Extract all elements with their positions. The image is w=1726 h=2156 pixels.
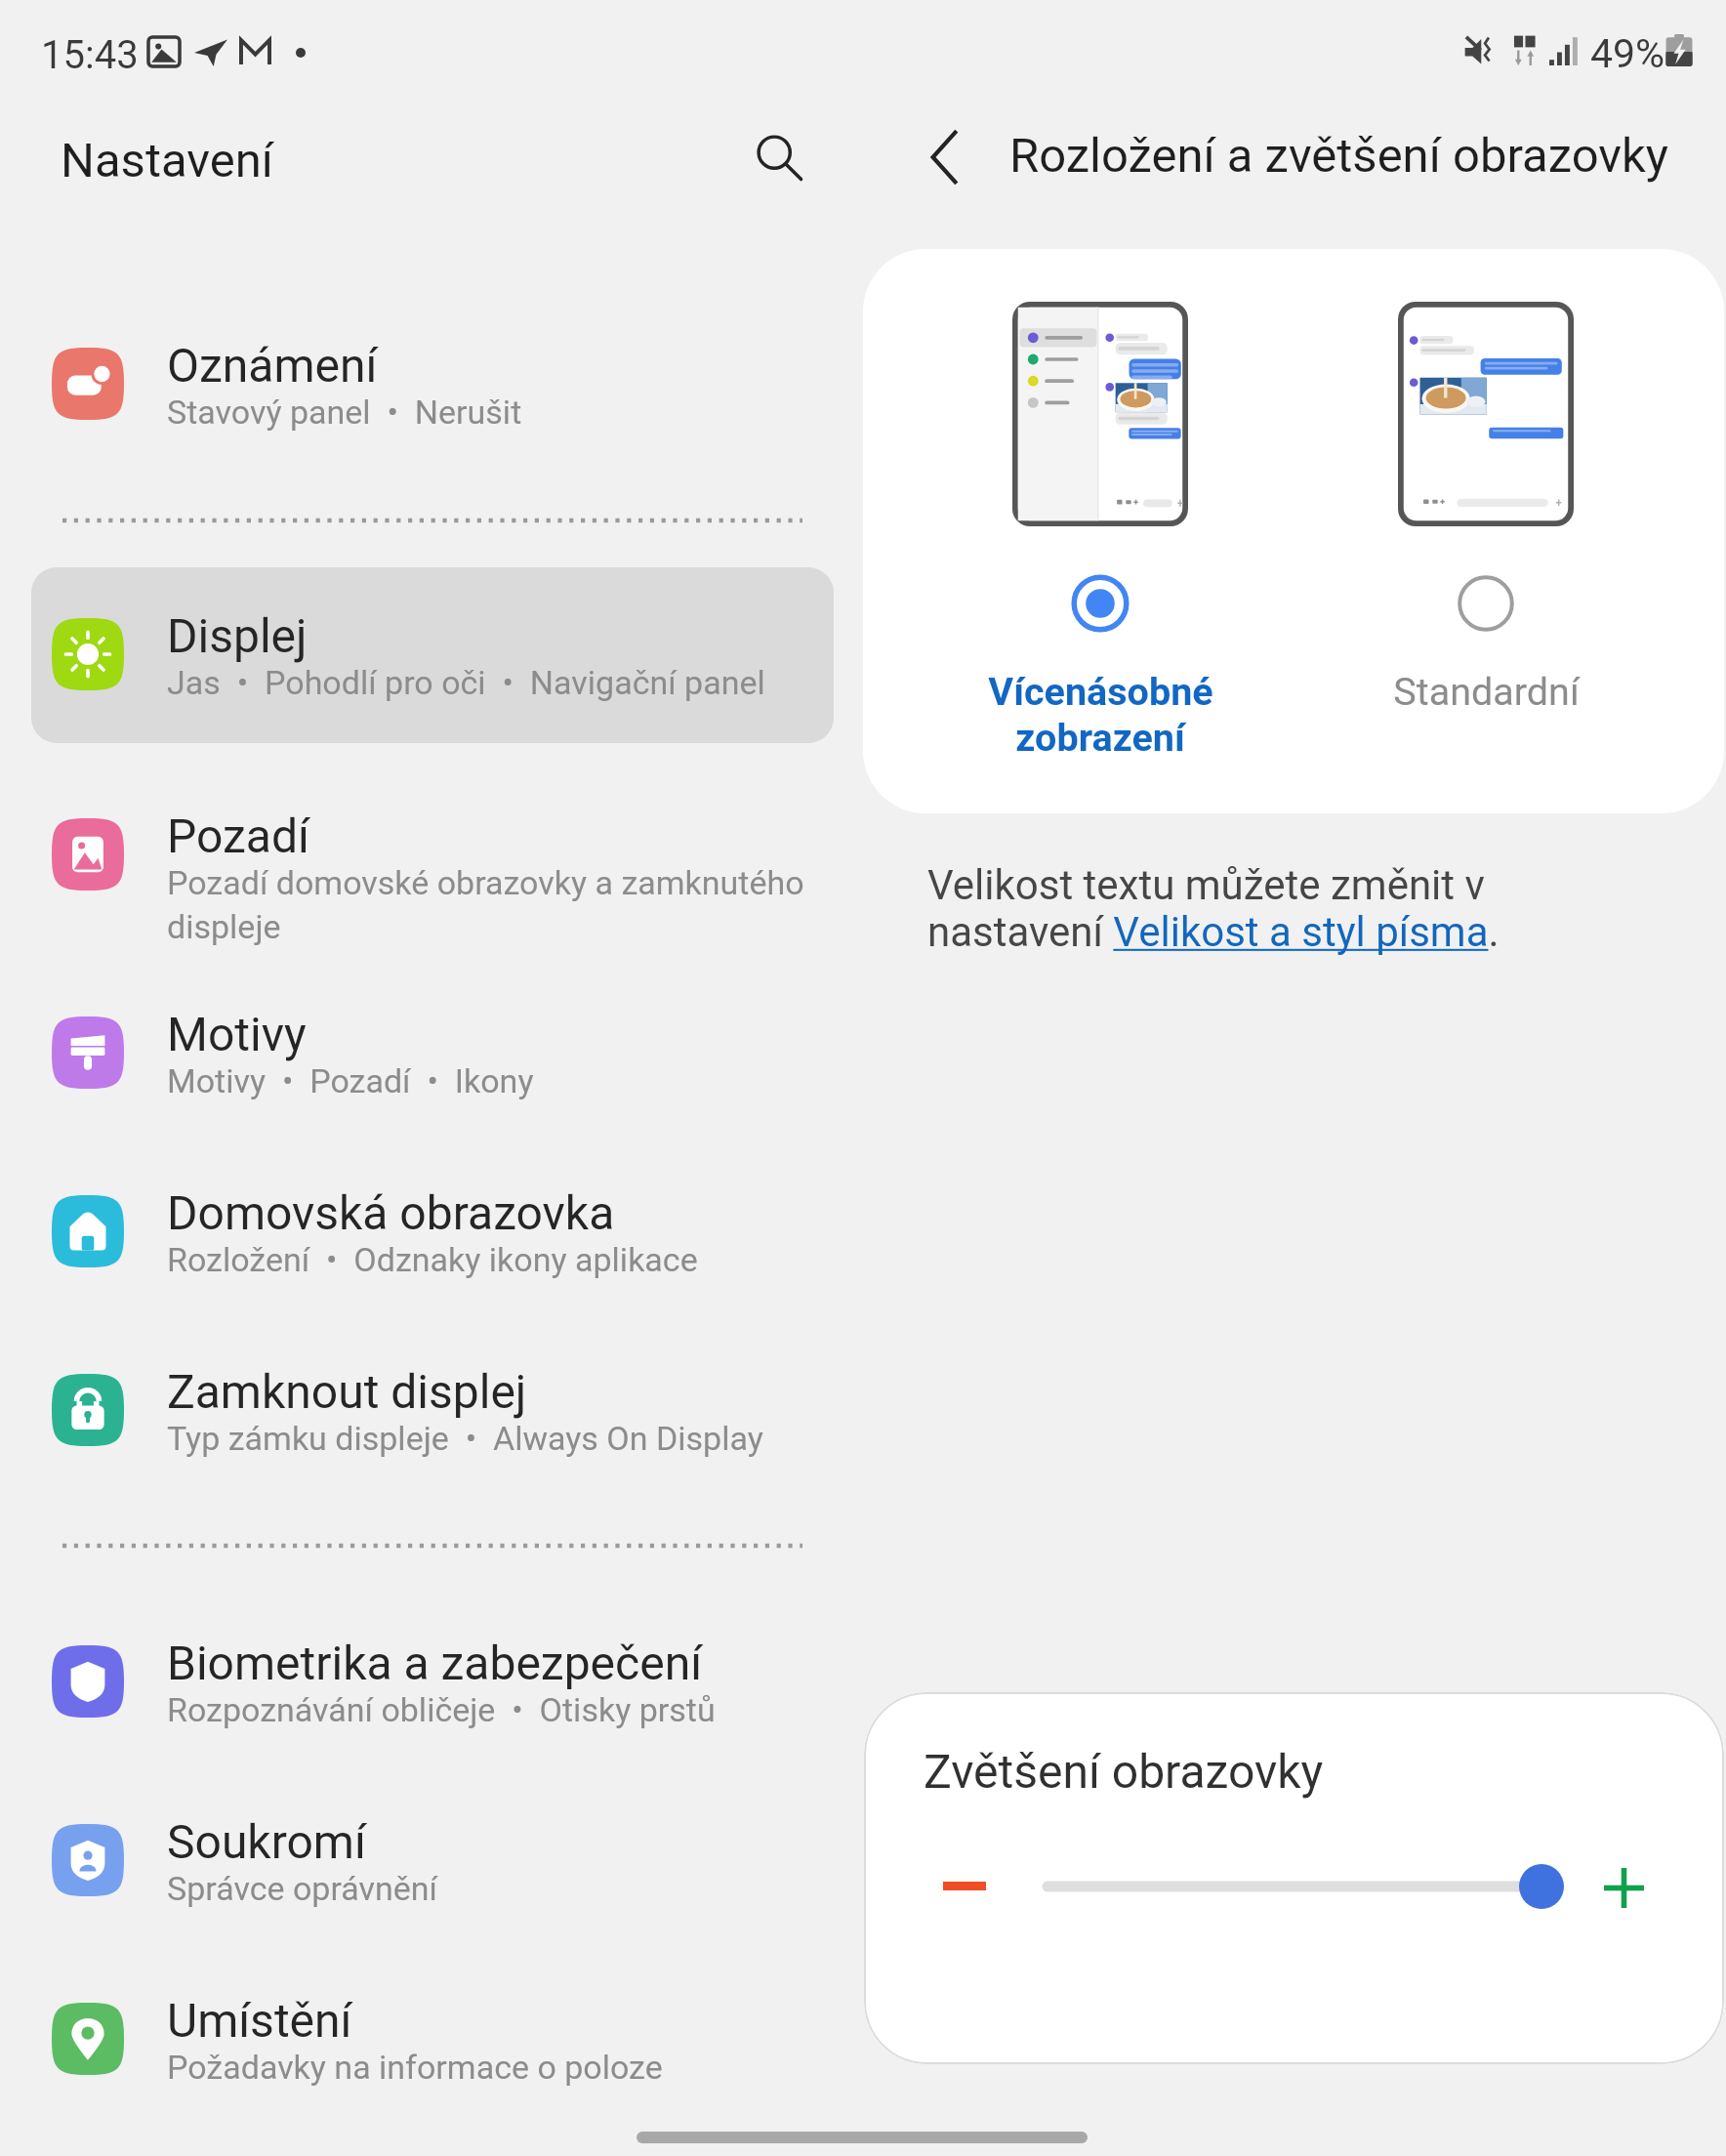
staticText: Jas • Pohodlí pro oči • Navigační panel xyxy=(167,663,765,702)
staticText: Stavový panel • Nerušit xyxy=(167,393,522,432)
staticText: Zvětšení obrazovky xyxy=(924,1744,1324,1799)
button[interactable]: Standardní xyxy=(1455,572,1517,635)
button[interactable]: Pozadí xyxy=(31,762,834,947)
button[interactable]: Motivy xyxy=(31,979,834,1126)
staticText: Vícenásobné xyxy=(988,669,1213,714)
staticText: Pozadí domovské obrazovky a zamknutého d… xyxy=(167,863,804,947)
button[interactable]: Umístění xyxy=(31,1966,834,2112)
staticText: Rozložení a zvětšení obrazovky xyxy=(1009,128,1668,184)
staticText: Domovská obrazovka xyxy=(167,1185,615,1240)
staticText: 49% xyxy=(1590,30,1665,77)
staticText: Požadavky na informace o poloze xyxy=(167,2048,663,2087)
button[interactable]: Biometrika a zabezpečení xyxy=(31,1608,834,1755)
staticText: Správce oprávnění xyxy=(167,1869,437,1908)
staticText: Motivy xyxy=(167,1007,307,1061)
button[interactable]: Back xyxy=(896,109,992,205)
staticText: Displej xyxy=(167,608,308,663)
button[interactable]: Zamknout displej xyxy=(31,1337,834,1483)
button[interactable]: Vícenásobné xyxy=(1069,572,1131,635)
button[interactable]: Increase xyxy=(1584,1849,1663,1926)
staticText: Rozložení • Odznaky ikony aplikace xyxy=(167,1240,698,1279)
button[interactable]: Soukromí xyxy=(31,1787,834,1933)
staticText: Motivy • Pozadí • Ikony xyxy=(167,1061,534,1100)
button[interactable]: Search xyxy=(731,108,827,204)
staticText: Biometrika a zabezpečení xyxy=(167,1636,703,1690)
button[interactable]: Oznámení xyxy=(31,311,834,457)
button[interactable]: Decrease xyxy=(925,1847,1004,1924)
staticText: Rozpoznávání obličeje • Otisky prstů xyxy=(167,1690,716,1729)
staticText: Velikost textu můžete změnit v nastavení… xyxy=(927,861,1500,957)
staticText: Umístění xyxy=(167,1993,352,2048)
button[interactable]: Nastavení xyxy=(25,105,318,213)
staticText: Zamknout displej xyxy=(167,1364,527,1419)
staticText: Oznámení xyxy=(167,338,378,393)
staticText: zobrazení xyxy=(1015,715,1185,760)
staticText: Typ zámku displeje • Always On Display xyxy=(167,1419,763,1458)
button[interactable]: Domovská obrazovka xyxy=(31,1158,834,1305)
staticText: Pozadí xyxy=(167,808,309,863)
button[interactable]: Displej xyxy=(31,581,834,727)
staticText: Standardní xyxy=(1393,669,1580,714)
staticText: Soukromí xyxy=(167,1814,366,1869)
staticText: Nastavení xyxy=(61,133,273,188)
staticText: 15:43 xyxy=(41,32,139,78)
